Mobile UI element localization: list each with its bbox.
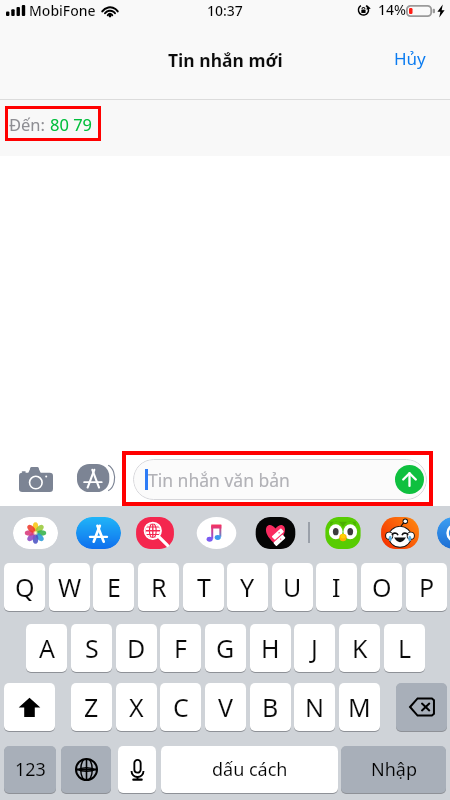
button[interactable]: App <box>437 517 450 549</box>
button[interactable]: Y <box>227 563 268 611</box>
button[interactable]: P <box>406 563 447 611</box>
staticText: N <box>305 690 325 724</box>
button[interactable]: Change keyboard <box>61 746 111 793</box>
staticText: Y <box>240 570 255 604</box>
staticText: R <box>151 570 167 604</box>
staticText: 14% <box>378 0 406 19</box>
button[interactable]: S <box>71 624 112 672</box>
button[interactable]: App <box>133 517 177 549</box>
button[interactable]: G <box>205 624 246 672</box>
staticText: dấu cách <box>212 757 288 782</box>
staticText: Tin nhắn văn bản <box>148 468 290 492</box>
button[interactable]: App Store <box>71 458 119 498</box>
staticText: Nhập <box>371 757 417 782</box>
staticText: P <box>419 570 435 604</box>
button[interactable]: Hủy <box>370 38 450 79</box>
button[interactable]: Numbers <box>4 746 56 793</box>
staticText: Tin nhắn mới <box>168 48 283 72</box>
button[interactable]: Z <box>71 683 112 731</box>
button[interactable]: W <box>49 563 90 611</box>
button[interactable]: O <box>361 563 402 611</box>
button[interactable]: App <box>378 517 422 549</box>
staticText: 80 79 <box>50 113 93 135</box>
staticText: Hủy <box>394 47 426 70</box>
button[interactable]: Send <box>395 465 424 494</box>
button[interactable]: App <box>194 517 239 549</box>
staticText: A <box>39 631 55 665</box>
button[interactable]: B <box>250 683 291 731</box>
button[interactable]: Camera <box>11 458 61 498</box>
staticText: G <box>216 631 235 665</box>
staticText: MobiFone <box>29 1 96 20</box>
staticText: I <box>332 570 341 604</box>
staticText: L <box>398 631 412 665</box>
button[interactable]: D <box>116 624 157 672</box>
staticText: D <box>127 631 146 665</box>
staticText: V <box>218 690 234 724</box>
staticText: 123 <box>15 757 46 782</box>
button[interactable]: A <box>26 624 67 672</box>
staticText: T <box>197 570 211 604</box>
staticText: U <box>283 570 302 604</box>
button[interactable]: App <box>253 517 298 549</box>
button[interactable]: E <box>93 563 134 611</box>
button[interactable]: Space <box>161 746 338 793</box>
button[interactable]: App <box>321 517 365 549</box>
button[interactable]: H <box>250 624 291 672</box>
button[interactable]: Shift <box>4 683 55 731</box>
staticText: J <box>311 631 318 665</box>
button[interactable]: J <box>294 624 335 672</box>
button[interactable]: X <box>116 683 157 731</box>
button[interactable]: Return <box>341 746 446 793</box>
button[interactable]: V <box>205 683 246 731</box>
staticText: E <box>107 570 121 604</box>
button[interactable]: N <box>294 683 335 731</box>
staticText: B <box>262 690 279 724</box>
button[interactable]: App <box>76 517 121 549</box>
staticText: F <box>174 631 187 665</box>
button[interactable]: T <box>183 563 224 611</box>
staticText: Đến: <box>9 113 45 135</box>
button[interactable]: K <box>339 624 380 672</box>
button[interactable]: Đến: <box>0 100 450 156</box>
staticText: O <box>372 570 392 604</box>
staticText: Z <box>84 690 99 724</box>
button[interactable]: C <box>160 683 201 731</box>
staticText: Q <box>15 570 35 604</box>
staticText: M <box>348 690 371 724</box>
staticText: 10:37 <box>207 1 243 20</box>
staticText: H <box>261 631 280 665</box>
button[interactable]: App <box>13 517 58 549</box>
staticText: S <box>85 631 99 665</box>
button[interactable]: U <box>272 563 313 611</box>
button[interactable]: R <box>138 563 179 611</box>
staticText: X <box>129 690 144 724</box>
button[interactable]: F <box>160 624 201 672</box>
staticText: W <box>58 570 82 604</box>
button[interactable]: Dictation <box>118 746 156 793</box>
staticText: K <box>352 631 368 665</box>
button[interactable]: Q <box>4 563 45 611</box>
button[interactable]: M <box>339 683 380 731</box>
button[interactable]: Tin nhắn văn bản <box>133 459 427 500</box>
button[interactable]: L <box>384 624 425 672</box>
button[interactable]: Backspace <box>396 683 447 731</box>
button[interactable]: I <box>316 563 357 611</box>
staticText: C <box>173 690 189 724</box>
